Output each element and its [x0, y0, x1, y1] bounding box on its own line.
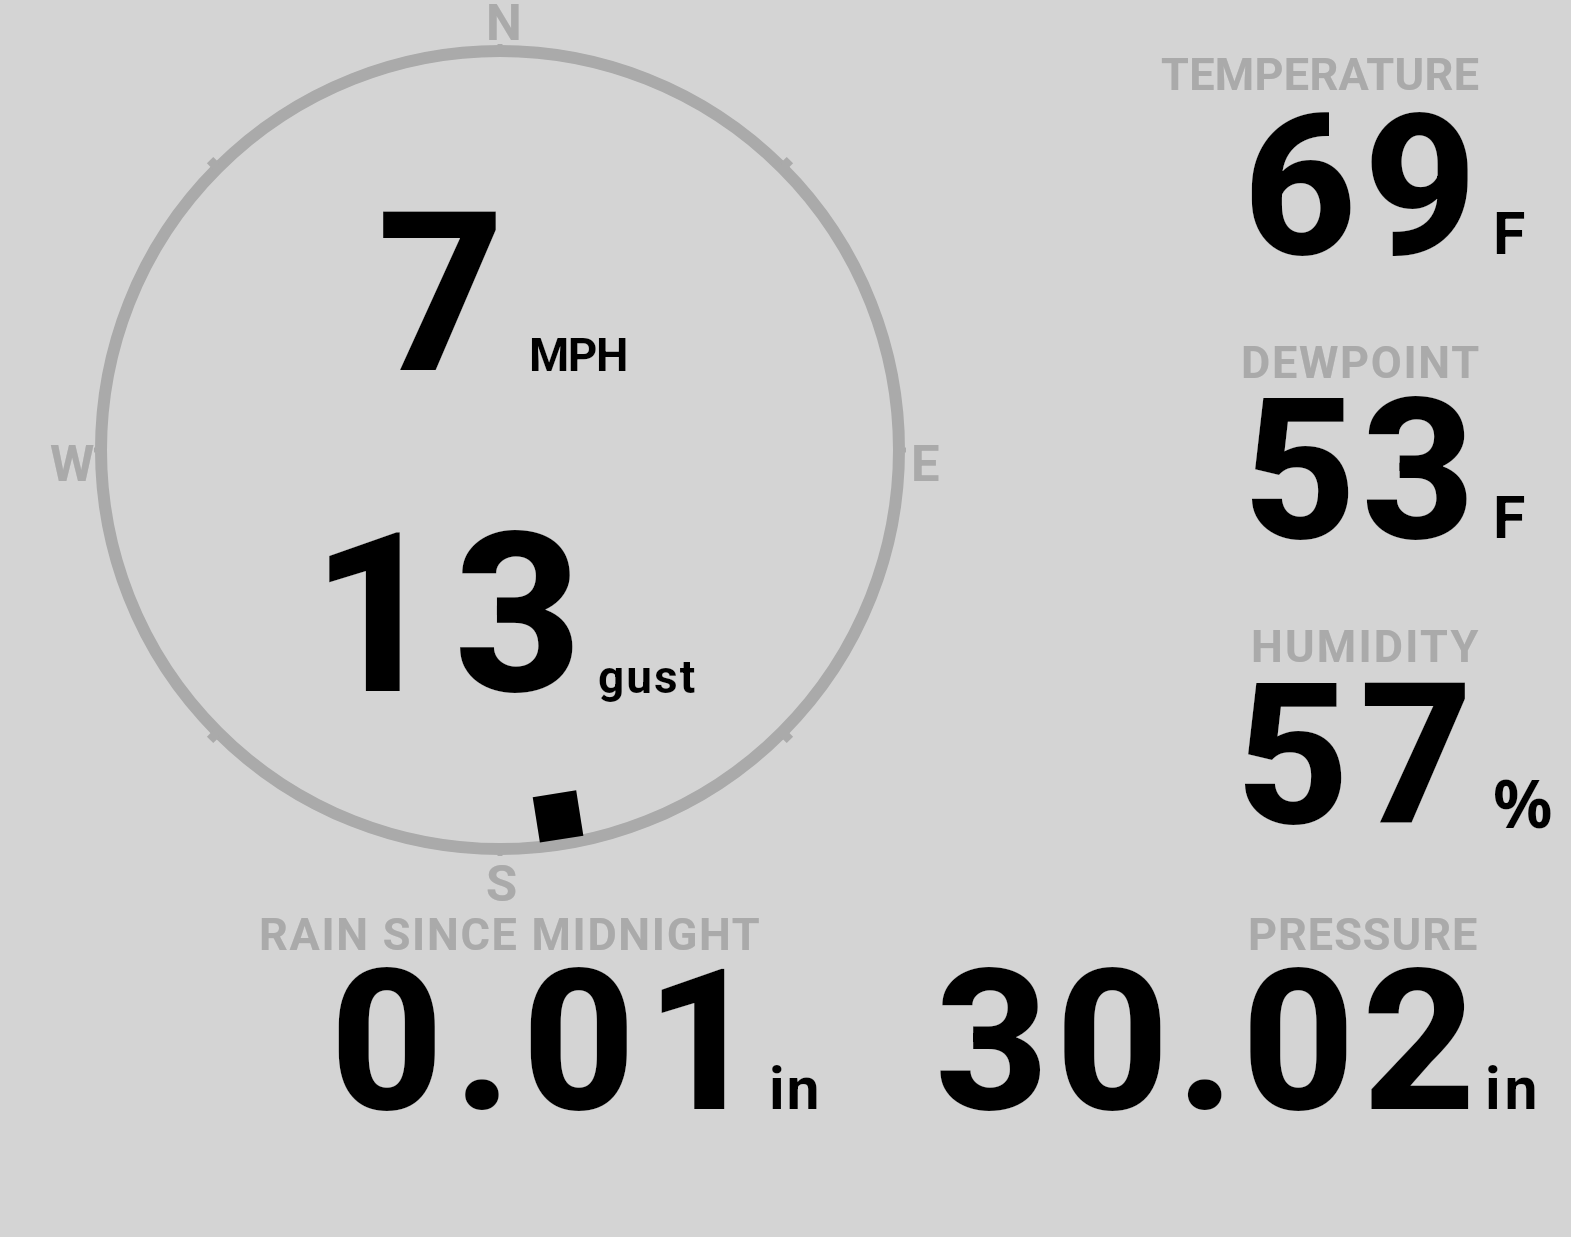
staticText: F [1493, 483, 1526, 552]
staticText: HUMIDITY [1251, 620, 1481, 673]
staticText: RAIN SINCE MIDNIGHT [259, 908, 762, 961]
staticText: gust [598, 650, 698, 704]
staticText: in [1485, 1054, 1542, 1123]
staticText: in [769, 1054, 822, 1123]
staticText: PRESSURE [1248, 908, 1479, 961]
button[interactable]: Wind 7 miles per hour, gusting 13, direc… [90, 40, 910, 910]
staticText: 30.02 [935, 926, 1483, 1157]
staticText: 57 [1236, 640, 1484, 871]
staticText: 53 [1243, 355, 1481, 586]
button[interactable]: Dewpoint 53 degrees Fahrenheit [1100, 325, 1571, 595]
staticText: S [486, 854, 518, 913]
staticText: W [50, 434, 95, 493]
staticText: 69 [1243, 71, 1485, 302]
button[interactable]: Temperature 69 degrees Fahrenheit [1100, 40, 1571, 310]
staticText: 0.01 [330, 926, 770, 1157]
staticText: TEMPERATURE [1161, 48, 1480, 101]
button[interactable]: Humidity 57 percent [1100, 610, 1571, 880]
staticText: F [1493, 199, 1526, 268]
button[interactable]: Rain since midnight 0.01 inches [240, 905, 860, 1145]
staticText: MPH [529, 328, 627, 382]
staticText: E [911, 434, 940, 493]
staticText: % [1493, 757, 1553, 847]
staticText: 13 [311, 485, 598, 745]
staticText: 7 [377, 164, 506, 424]
button[interactable]: Pressure 30.02 inches [900, 905, 1500, 1145]
staticText: DEWPOINT [1241, 336, 1481, 389]
staticText: N [486, 0, 522, 52]
